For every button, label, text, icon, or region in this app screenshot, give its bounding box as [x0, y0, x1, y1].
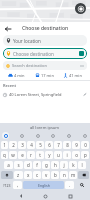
button[interactable]: m: [69, 171, 77, 179]
button[interactable]: all lorem ipsum: [0, 123, 90, 131]
button[interactable]: Comma: [13, 181, 22, 189]
staticText: w: [11, 152, 15, 158]
staticText: 4: [30, 142, 33, 148]
button[interactable]: 17 min: [33, 72, 56, 79]
button[interactable]: s: [14, 161, 23, 169]
staticText: y: [48, 152, 51, 158]
staticText: 2: [12, 142, 15, 148]
button[interactable]: Search: [75, 181, 89, 189]
button[interactable]: Recenter map: [75, 3, 86, 14]
button[interactable]: t: [36, 151, 44, 159]
button[interactable]: ?123: [1, 181, 12, 189]
button[interactable]: 4 min: [6, 72, 27, 79]
button[interactable]: Keyboard tool 2: [34, 132, 41, 139]
button[interactable]: a: [4, 161, 13, 169]
button[interactable]: l: [78, 161, 86, 169]
staticText: Your location: [13, 38, 41, 44]
button[interactable]: r: [27, 151, 35, 159]
button[interactable]: Backspace: [78, 171, 89, 179]
button[interactable]: Space: [23, 181, 64, 189]
staticText: 5: [39, 142, 42, 148]
staticText: q: [3, 152, 6, 158]
staticText: 8: [66, 142, 69, 148]
staticText: b: [54, 172, 57, 178]
button[interactable]: Voice search: [79, 51, 84, 56]
button[interactable]: Keyboard tool 4: [65, 132, 72, 139]
staticText: 4 min: [14, 73, 25, 78]
button[interactable]: 8: [63, 141, 71, 149]
button[interactable]: Choose destination: [3, 48, 87, 59]
staticText: d: [27, 162, 30, 168]
staticText: g: [45, 162, 48, 168]
staticText: h: [54, 162, 57, 168]
button[interactable]: h: [51, 161, 59, 169]
staticText: Search destination: [12, 63, 80, 68]
button[interactable]: Keyboard tool 1: [18, 132, 25, 139]
staticText: c: [36, 172, 39, 178]
staticText: 9: [75, 142, 78, 148]
button[interactable]: c: [33, 171, 41, 179]
button[interactable]: y: [45, 151, 53, 159]
button[interactable]: Your location: [3, 35, 87, 46]
button[interactable]: z: [14, 171, 23, 179]
button[interactable]: 41 min: [61, 72, 84, 79]
staticText: 41 min: [69, 73, 82, 78]
button[interactable]: 1: [1, 141, 8, 149]
button[interactable]: 5: [36, 141, 44, 149]
button[interactable]: 7: [54, 141, 62, 149]
button[interactable]: 40 Lorem Street, Springfield: [3, 90, 87, 99]
button[interactable]: x: [24, 171, 32, 179]
staticText: v: [45, 172, 48, 178]
button[interactable]: Use suggestion: [83, 93, 87, 97]
button[interactable]: Recent apps: [66, 192, 74, 200]
button[interactable]: u: [54, 151, 62, 159]
staticText: Choose destination: [13, 51, 79, 57]
button[interactable]: Back: [17, 192, 25, 200]
button[interactable]: o: [72, 151, 80, 159]
staticText: all lorem ipsum: [30, 125, 60, 130]
staticText: e: [21, 152, 24, 158]
button[interactable]: More: [80, 64, 84, 68]
staticText: a: [7, 162, 10, 168]
button[interactable]: g: [42, 161, 50, 169]
button[interactable]: 0: [81, 141, 89, 149]
staticText: p: [84, 152, 87, 158]
staticText: Choose destination: [22, 25, 69, 32]
button[interactable]: 6: [45, 141, 53, 149]
button[interactable]: Google: [2, 132, 9, 139]
button[interactable]: Period: [65, 181, 74, 189]
staticText: Recent: [3, 83, 17, 88]
staticText: x: [27, 172, 30, 178]
button[interactable]: Search destination: [3, 61, 87, 70]
button[interactable]: Keyboard tool 3: [49, 132, 56, 139]
button[interactable]: k: [69, 161, 77, 169]
button[interactable]: Home: [41, 192, 49, 200]
button[interactable]: i: [63, 151, 71, 159]
button[interactable]: w: [9, 151, 17, 159]
staticText: z: [17, 172, 20, 178]
button[interactable]: Shift: [1, 171, 13, 179]
button[interactable]: v: [42, 171, 50, 179]
button[interactable]: b: [51, 171, 59, 179]
button[interactable]: f: [33, 161, 41, 169]
button[interactable]: p: [81, 151, 89, 159]
button[interactable]: 3: [18, 141, 26, 149]
button[interactable]: j: [60, 161, 68, 169]
staticText: 3: [21, 142, 24, 148]
button[interactable]: 4: [27, 141, 35, 149]
staticText: t: [39, 152, 41, 158]
button[interactable]: d: [24, 161, 32, 169]
staticText: 0: [84, 142, 87, 148]
button[interactable]: n: [60, 171, 68, 179]
staticText: m: [71, 172, 76, 178]
button[interactable]: 9: [72, 141, 80, 149]
button[interactable]: Keyboard tool 5: [81, 132, 88, 139]
button[interactable]: e: [18, 151, 26, 159]
button[interactable]: q: [1, 151, 8, 159]
staticText: 40 Lorem Street, Springfield: [9, 92, 83, 97]
button[interactable]: 2: [9, 141, 17, 149]
staticText: ,: [17, 182, 19, 188]
staticText: l: [81, 162, 83, 168]
staticText: English: [38, 183, 50, 188]
button[interactable]: Back: [2, 23, 13, 34]
